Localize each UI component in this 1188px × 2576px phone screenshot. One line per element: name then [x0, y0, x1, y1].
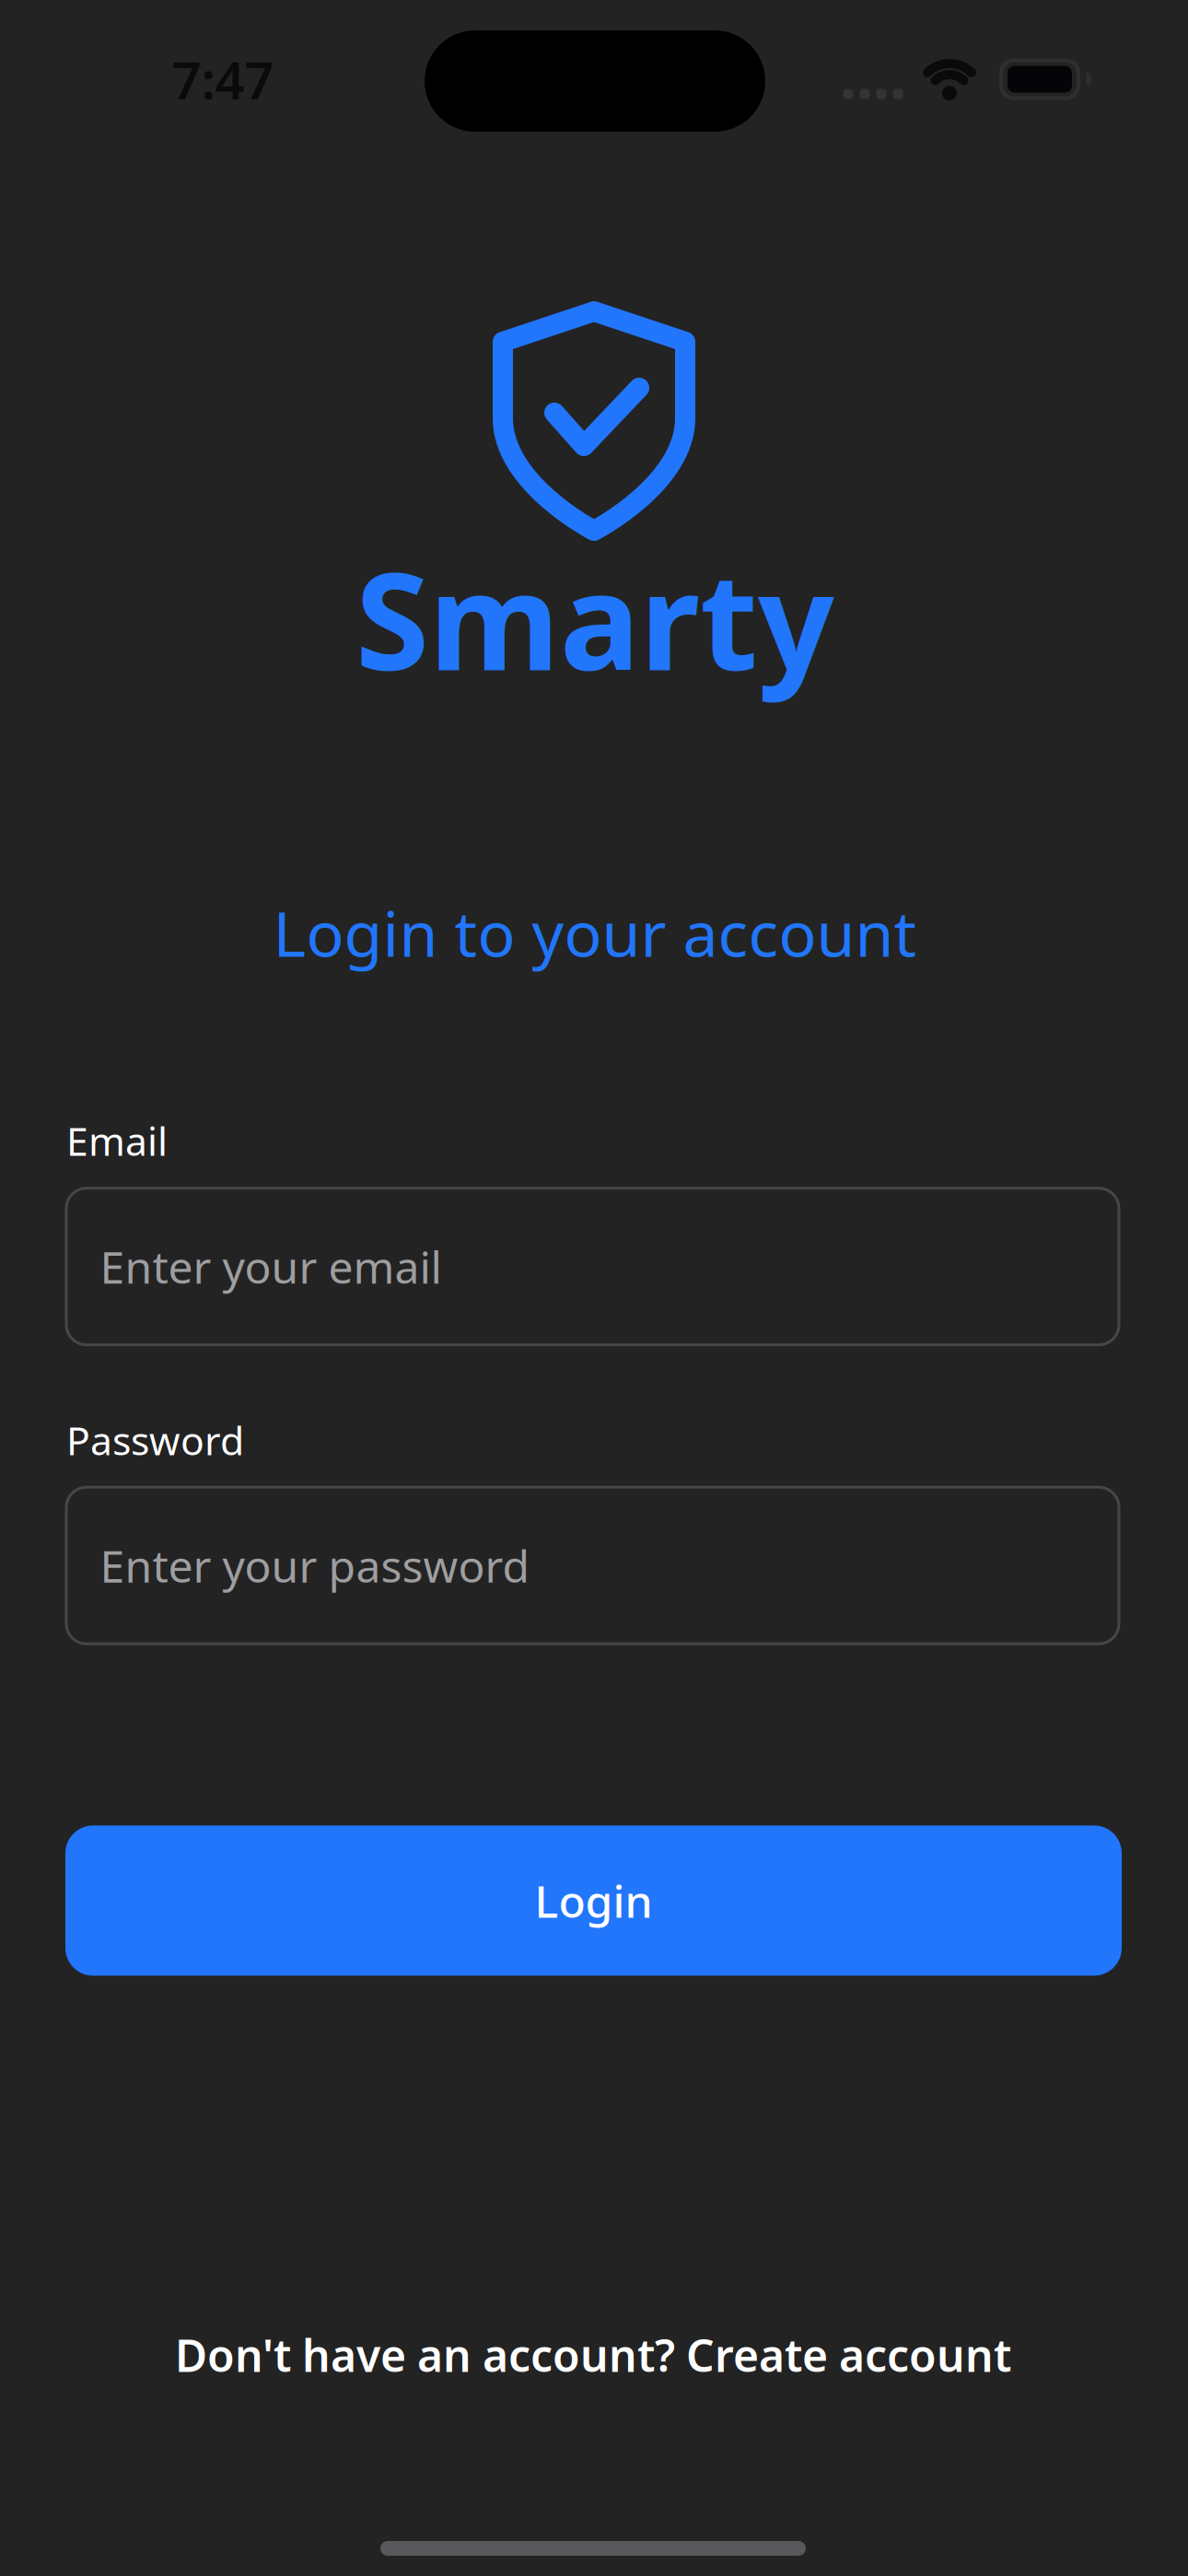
staticText: Login to your account — [273, 891, 917, 974]
staticText: Smarty — [355, 529, 834, 707]
button[interactable]: Login — [65, 1825, 1122, 1976]
button[interactable]: Enter your password — [65, 1486, 1120, 1645]
staticText: Don't have an account? Create account — [175, 2325, 1011, 2384]
staticText: 7:47 — [172, 45, 274, 114]
button[interactable]: Don't have an account? Create account — [175, 2325, 1011, 2384]
staticText: Login — [535, 1871, 652, 1930]
staticText: Enter your password — [100, 1536, 530, 1595]
staticText: Password — [66, 1414, 244, 1466]
staticText: Email — [66, 1115, 168, 1167]
staticText: Enter your email — [100, 1237, 442, 1296]
button[interactable]: Enter your email — [65, 1187, 1120, 1346]
